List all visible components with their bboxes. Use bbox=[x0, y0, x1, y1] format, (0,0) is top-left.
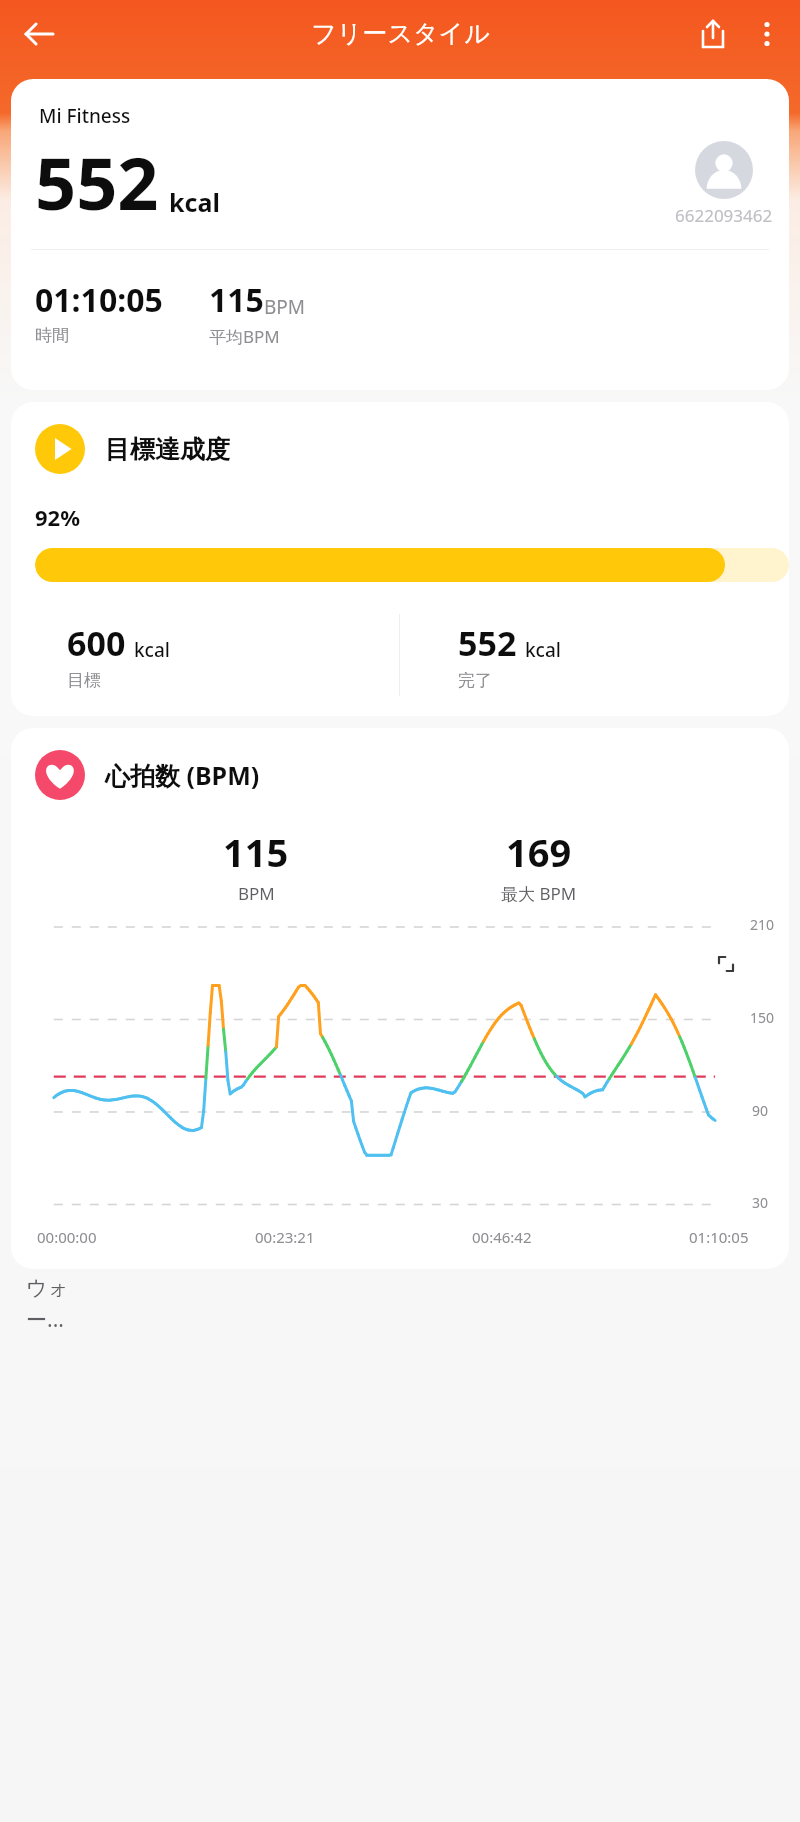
staticText: Mi Fitness bbox=[39, 103, 131, 129]
staticText: 00:23:21 bbox=[255, 1227, 472, 1247]
staticText: ウォ ー... bbox=[26, 1275, 69, 1333]
button[interactable]: Mi Fitness bbox=[11, 79, 789, 390]
staticText: 目標 bbox=[67, 670, 101, 691]
staticText: 90 bbox=[752, 1101, 769, 1120]
staticText: 552 bbox=[35, 133, 159, 231]
staticText: 平均BPM bbox=[209, 325, 280, 348]
staticText: 30 bbox=[752, 1193, 769, 1212]
staticText: 169 bbox=[506, 826, 572, 878]
staticText: 最大 BPM bbox=[501, 882, 577, 905]
staticText: kcal bbox=[525, 637, 561, 663]
staticText: 600 bbox=[67, 620, 126, 666]
staticText: 6622093462 bbox=[675, 204, 773, 227]
staticText: 完了 bbox=[458, 670, 492, 691]
staticText: 目標達成度 bbox=[105, 434, 230, 465]
staticText: 150 bbox=[750, 1008, 775, 1027]
staticText: 552 bbox=[458, 620, 517, 666]
staticText: 01:10:05 bbox=[35, 278, 163, 322]
staticText: 115 bbox=[209, 278, 264, 322]
staticText: 92% bbox=[35, 502, 81, 532]
staticText: 00:00:00 bbox=[37, 1227, 255, 1247]
button[interactable]: 目標達成度 bbox=[11, 402, 789, 716]
button[interactable]: Expand chart bbox=[705, 943, 747, 985]
button[interactable]: Back bbox=[12, 7, 66, 61]
staticText: kcal bbox=[134, 637, 170, 663]
staticText: BPM bbox=[264, 294, 306, 320]
staticText: 115 bbox=[223, 826, 289, 878]
staticText: BPM bbox=[238, 882, 275, 905]
staticText: 時間 bbox=[35, 325, 69, 346]
button[interactable]: 心拍数 (BPM) bbox=[11, 728, 789, 1269]
staticText: フリースタイル bbox=[311, 18, 490, 49]
staticText: 00:46:42 bbox=[472, 1227, 689, 1247]
staticText: 心拍数 (BPM) bbox=[105, 758, 260, 792]
button[interactable]: More options bbox=[740, 7, 794, 61]
button[interactable]: Share bbox=[686, 7, 740, 61]
staticText: 01:10:05 bbox=[689, 1227, 749, 1247]
staticText: kcal bbox=[169, 185, 220, 219]
staticText: 210 bbox=[750, 915, 775, 934]
